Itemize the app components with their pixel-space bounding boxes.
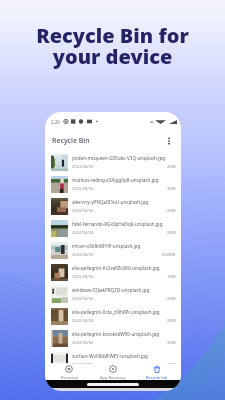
staticText: windows-Y2JwkPRQZO-unsplash.jpg xyxy=(72,287,150,293)
button[interactable]: elia-pellegrini-0cto_z9lh8Pc-unsplash.jp… xyxy=(47,305,179,327)
button[interactable]: elia-pellegrini-bzvokxdW50-unsplash.jpg xyxy=(47,327,179,349)
button[interactable]: imran-o3ti8nRFHP-unsplash.jpg xyxy=(47,239,179,261)
staticText: 2023/04/02 xyxy=(72,274,94,279)
staticText: Recycle Bin for your device xyxy=(36,22,189,70)
staticText: surface-WzXRddFWEY-unsplash.jpg xyxy=(72,353,148,359)
staticText: Recovery xyxy=(61,375,78,380)
staticText: elia-pellegrini-bzvokxdW50-unsplash.jpg xyxy=(72,331,160,337)
staticText: fidel-fernando-RGx0pHw5q0-unsplash.jpg xyxy=(72,221,163,227)
staticText: 2023/04/02 xyxy=(72,230,94,235)
staticText: App Recovery xyxy=(100,375,126,380)
staticText: alex-ivry-yPNQa0I3oU-unsplash.jpg xyxy=(72,199,149,205)
staticText: 2MB xyxy=(167,208,176,213)
staticText: 2MB xyxy=(167,296,176,301)
staticText: 2023/04/02 xyxy=(72,296,94,301)
staticText: 2:26 xyxy=(51,119,60,125)
staticText: elia-pellegrini-Kr2sePZsSR0-unsplash.jpg xyxy=(72,265,160,271)
staticText: 2MB xyxy=(167,340,176,345)
staticText: jordan-mcqueen-G0Eubc-V3Q-unsplash.jpg xyxy=(72,155,166,161)
button[interactable]: App Recovery xyxy=(91,364,135,380)
button[interactable]: More options xyxy=(163,135,175,147)
staticText: Recycle bin xyxy=(146,375,168,380)
staticText: 2023/04/02 xyxy=(72,164,94,169)
button[interactable]: mathias-reding-zG4jgg9p8-unsplash.jpg xyxy=(47,173,179,195)
button[interactable]: jordan-mcqueen-G0Eubc-V3Q-unsplash.jpg xyxy=(47,151,179,173)
staticText: 2MB xyxy=(167,164,176,169)
button[interactable]: elia-pellegrini-Kr2sePZsSR0-unsplash.jpg xyxy=(47,261,179,283)
button[interactable]: surface-WzXRddFWEY-unsplash.jpg xyxy=(47,349,179,371)
staticText: 2023/04/02 xyxy=(72,362,94,367)
staticText: mathias-reding-zG4jgg9p8-unsplash.jpg xyxy=(72,177,159,183)
staticText: 4MB xyxy=(167,362,176,367)
staticText: 1MB xyxy=(167,274,176,279)
staticText: 2023/04/02 xyxy=(72,318,94,323)
staticText: 1020KB xyxy=(161,252,176,257)
button[interactable]: fidel-fernando-RGx0pHw5q0-unsplash.jpg xyxy=(47,217,179,239)
button[interactable]: Recycle bin xyxy=(135,364,179,380)
staticText: 2023/04/02 xyxy=(72,340,94,345)
staticText: imran-o3ti8nRFHP-unsplash.jpg xyxy=(72,243,141,249)
staticText: 2MB xyxy=(167,318,176,323)
button[interactable]: alex-ivry-yPNQa0I3oU-unsplash.jpg xyxy=(47,195,179,217)
staticText: Recycle Bin xyxy=(52,136,90,146)
staticText: 3MB xyxy=(167,186,176,191)
staticText: elia-pellegrini-0cto_z9lh8Pc-unsplash.jp… xyxy=(72,309,160,315)
staticText: 2023/04/02 xyxy=(72,208,94,213)
staticText: 2023/04/02 xyxy=(72,252,94,257)
staticText: 2023/04/02 xyxy=(72,186,94,191)
button[interactable]: windows-Y2JwkPRQZO-unsplash.jpg xyxy=(47,283,179,305)
button[interactable]: Recovery xyxy=(47,364,91,380)
staticText: 2MB xyxy=(167,230,176,235)
